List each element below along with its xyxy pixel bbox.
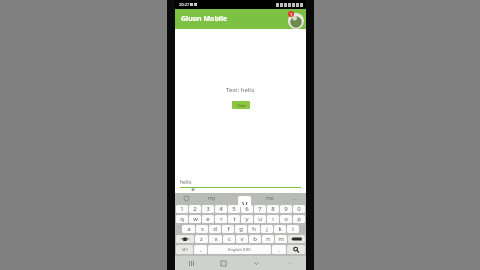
button[interactable]: Search (287, 245, 305, 254)
staticText: o (284, 215, 288, 223)
staticText: 1 (180, 205, 184, 213)
button[interactable] (176, 193, 197, 204)
staticText: d (213, 225, 217, 233)
staticText: 5 (232, 205, 236, 213)
staticText: 9 (284, 205, 288, 213)
button[interactable]: Profile (288, 11, 304, 27)
button[interactable]: q (176, 215, 188, 223)
button[interactable]: s (196, 225, 208, 233)
button[interactable]: v (236, 235, 248, 243)
staticText: b (253, 235, 257, 243)
button[interactable]: d (209, 225, 221, 233)
button[interactable]: 8 (267, 205, 279, 213)
button[interactable]: o (280, 215, 292, 223)
button[interactable]: g (235, 225, 247, 233)
button[interactable]: 7 (254, 205, 266, 213)
staticText: n (266, 235, 270, 243)
button[interactable]: p (293, 215, 305, 223)
staticText: z (200, 235, 203, 243)
button[interactable]: Home (207, 256, 240, 270)
staticText: v (240, 235, 244, 243)
button[interactable]: x (209, 235, 222, 243)
staticText: x (214, 235, 218, 243)
button[interactable]: 5 (228, 205, 240, 213)
button[interactable]: 4 (215, 205, 227, 213)
staticText: a (187, 225, 191, 233)
button[interactable]: t (228, 215, 240, 223)
button[interactable]: z (195, 235, 208, 243)
staticText: , (200, 246, 202, 254)
staticText: h (252, 225, 256, 233)
staticText: I (240, 195, 242, 202)
button[interactable]: 3 (202, 205, 214, 213)
staticText: f (227, 225, 230, 233)
staticText: p (297, 215, 301, 223)
staticText: e (206, 215, 210, 223)
staticText: 3 (206, 205, 210, 213)
staticText: w (193, 215, 198, 223)
button[interactable]: 2 (189, 205, 201, 213)
staticText: 8 (271, 205, 275, 213)
button[interactable]: r (215, 215, 227, 223)
staticText: !#1 (182, 247, 188, 252)
staticText: me (266, 195, 274, 202)
button[interactable]: 1 (176, 205, 188, 213)
staticText: c (228, 235, 231, 243)
button[interactable]: b (249, 235, 261, 243)
button[interactable]: i (267, 215, 279, 223)
staticText: hello (180, 179, 192, 186)
staticText: g (239, 225, 243, 233)
staticText: 6 (245, 205, 249, 213)
staticText: l (292, 225, 294, 233)
staticText: j (266, 225, 268, 233)
button[interactable]: c (223, 235, 235, 243)
button[interactable]: . (272, 245, 286, 254)
button[interactable]: h (248, 225, 260, 233)
staticText: y (242, 196, 248, 207)
button[interactable]: f (222, 225, 234, 233)
staticText: m (278, 235, 284, 243)
button[interactable]: 0 (293, 205, 305, 213)
button[interactable]: a (182, 225, 195, 233)
button[interactable]: Shift (176, 235, 194, 243)
staticText: u (258, 215, 262, 223)
staticText: 2 (193, 205, 197, 213)
button[interactable]: , (194, 245, 207, 254)
button[interactable]: Backspace (288, 235, 305, 243)
button[interactable]: Recents (175, 256, 207, 270)
staticText: ⋯ (292, 195, 298, 202)
staticText: Chat (237, 103, 246, 108)
staticText: . (278, 246, 280, 254)
staticText: k (278, 225, 282, 233)
button[interactable]: n (262, 235, 274, 243)
button[interactable]: w (189, 215, 201, 223)
button[interactable]: me (255, 193, 284, 204)
staticText: s (201, 225, 204, 233)
button[interactable]: e (202, 215, 214, 223)
staticText: English (UK) (228, 247, 251, 252)
button[interactable]: y (241, 215, 253, 223)
button[interactable]: !#1 (176, 245, 193, 254)
staticText: my (208, 195, 216, 202)
button[interactable]: l (287, 225, 299, 233)
button[interactable]: k (274, 225, 286, 233)
button[interactable]: I (226, 193, 255, 204)
staticText: Text: hello (226, 86, 255, 94)
staticText: i (272, 215, 274, 223)
button[interactable]: u (254, 215, 266, 223)
button[interactable]: my (197, 193, 226, 204)
button[interactable]: j (261, 225, 273, 233)
staticText: 1 (290, 12, 293, 17)
button[interactable]: Chat (232, 101, 250, 109)
button[interactable]: English (UK) (208, 245, 271, 254)
staticText: 0 (297, 205, 301, 213)
staticText: y (245, 215, 249, 223)
button[interactable]: 9 (280, 205, 292, 213)
staticText: r (220, 215, 223, 223)
button[interactable]: 6 (241, 205, 253, 213)
button[interactable]: Back (240, 256, 273, 270)
button[interactable]: m (275, 235, 287, 243)
staticText: Gluon Mobile (181, 14, 228, 24)
